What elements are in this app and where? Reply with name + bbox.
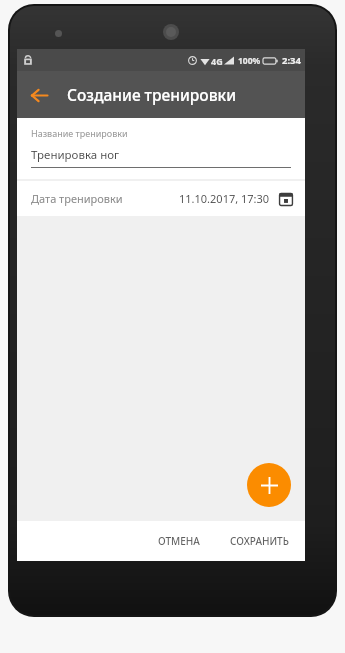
staticText: СОХРАНИТЬ: [230, 534, 289, 548]
staticText: Создание тренировки: [67, 84, 237, 105]
button[interactable]: СОХРАНИТЬ: [218, 525, 305, 557]
staticText: Тренировка ног: [31, 147, 120, 163]
staticText: 11.10.2017, 17:30: [179, 191, 270, 206]
button[interactable]: Back: [17, 73, 61, 117]
staticText: 4G: [211, 55, 223, 67]
other: Pick date: [279, 192, 293, 206]
button[interactable]: Add exercise: [247, 463, 291, 507]
staticText: 100%: [238, 55, 261, 67]
staticText: Название тренировки: [31, 127, 128, 139]
staticText: ОТМЕНА: [158, 534, 200, 548]
button[interactable]: Дата тренировки: [17, 181, 305, 216]
button[interactable]: ОТМЕНА: [146, 525, 212, 557]
staticText: Дата тренировки: [31, 191, 123, 206]
staticText: 2:34: [282, 54, 301, 67]
